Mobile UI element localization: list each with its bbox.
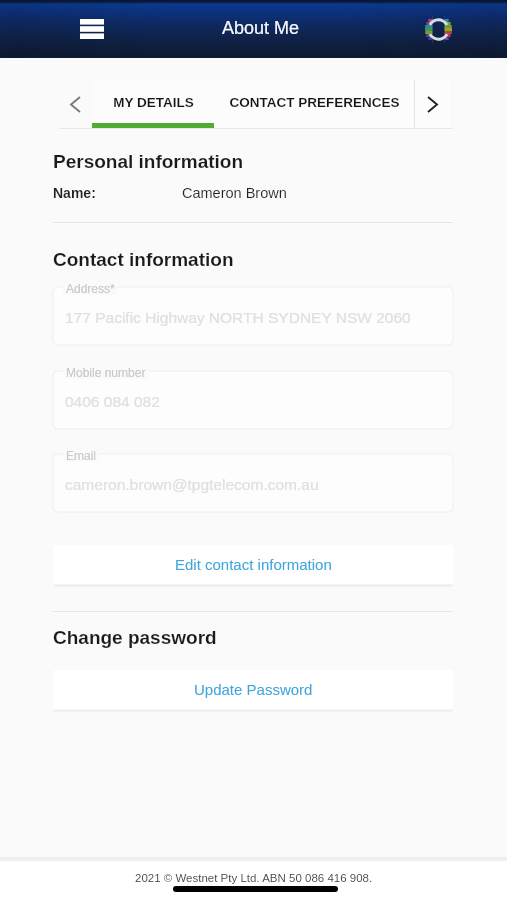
button[interactable]: Edit contact information [53,545,453,584]
button[interactable]: Previous tab [58,80,92,128]
staticText: Cameron Brown [182,185,287,201]
staticText: cameron.brown@tpgtelecom.com.au [65,476,319,493]
staticText: Contact information [53,249,234,270]
staticText: Address* [66,282,115,295]
staticText: 177 Pacific Highway NORTH SYDNEY NSW 206… [65,309,411,326]
button[interactable]: CONTACT PREFERENCES [214,80,414,128]
button[interactable]: Open navigation menu [72,9,112,49]
button[interactable]: Update Password [53,670,453,709]
staticText: 2021 © Westnet Pty Ltd. ABN 50 086 416 9… [135,872,373,885]
staticText: Personal information [53,151,244,172]
staticText: Change password [53,627,217,648]
staticText: Update Password [194,681,313,698]
staticText: MY DETAILS [113,95,194,110]
staticText: Mobile number [66,366,146,379]
staticText: CONTACT PREFERENCES [229,95,400,110]
staticText: About Me [222,18,300,38]
button[interactable]: MY DETAILS [92,80,214,128]
staticText: Email [66,449,97,462]
staticText: 0406 084 082 [65,393,160,410]
button[interactable]: Next tab [415,80,450,128]
staticText: Edit contact information [175,556,332,573]
button[interactable]: Account [420,11,456,47]
staticText: Name: [53,185,96,201]
